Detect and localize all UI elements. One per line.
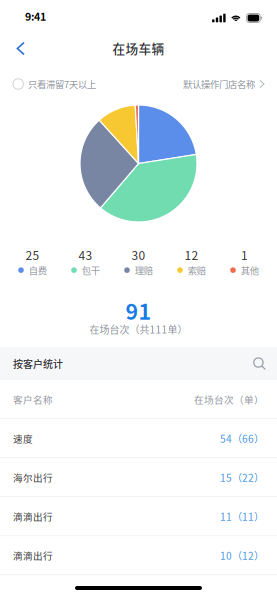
staticText: 10（12） [220, 548, 264, 563]
staticText: 在场台次（共111单） [89, 322, 187, 336]
staticText: 43 [78, 246, 92, 263]
staticText: 其他 [241, 263, 259, 277]
button[interactable]: 默认操作门店名称 [183, 60, 277, 98]
button[interactable]: Back [0, 30, 38, 60]
staticText: 滴滴出行 [13, 548, 53, 562]
staticText: 1 [241, 246, 248, 263]
staticText: 客户名称 [13, 392, 53, 406]
staticText: 12 [184, 246, 198, 263]
button[interactable]: 只看滞留7天以上 [0, 60, 96, 98]
staticText: 25 [25, 246, 39, 263]
button[interactable]: Search [248, 352, 266, 375]
staticText: 理赔 [135, 263, 153, 277]
staticText: 索赔 [188, 263, 206, 277]
staticText: 速度 [13, 431, 33, 445]
staticText: 54（66） [220, 431, 264, 446]
staticText: 只看滞留7天以上 [28, 77, 96, 91]
staticText: 在场台次（单） [194, 392, 264, 406]
staticText: 海尔出行 [13, 470, 53, 484]
staticText: 9:41 [25, 8, 46, 24]
staticText: 默认操作门店名称 [183, 77, 255, 91]
staticText: 自费 [29, 263, 47, 277]
staticText: 91 [125, 295, 151, 326]
staticText: 按客户统计 [13, 356, 63, 371]
button[interactable]: 滴滴出行 [0, 497, 277, 536]
staticText: 30 [131, 246, 145, 263]
button[interactable]: 滴滴出行 [0, 536, 277, 575]
staticText: 15（22） [220, 470, 264, 485]
button[interactable]: 海尔出行 [0, 458, 277, 497]
staticText: 11（11） [220, 509, 264, 524]
staticText: 包干 [82, 263, 100, 277]
staticText: 在场车辆 [112, 39, 164, 57]
button[interactable]: 速度 [0, 419, 277, 458]
staticText: 滴滴出行 [13, 509, 53, 523]
